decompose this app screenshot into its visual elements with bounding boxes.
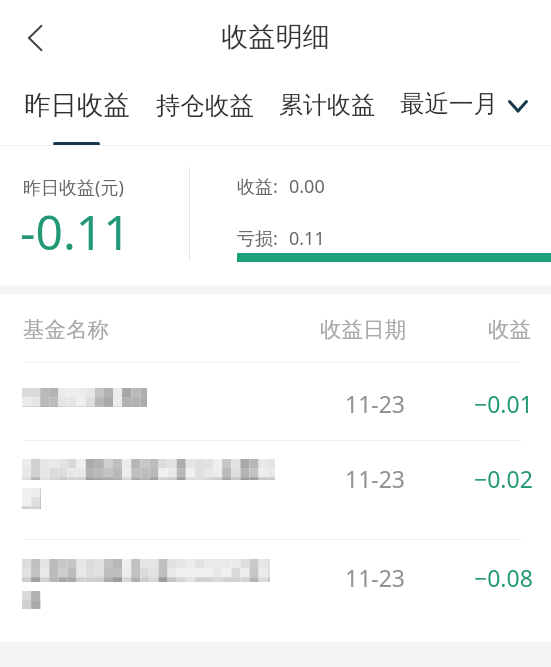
button[interactable]: 11-23 xyxy=(0,441,551,539)
button[interactable]: 累计收益 xyxy=(279,90,375,120)
staticText: 11-23 xyxy=(345,388,406,419)
staticText: 收益 xyxy=(488,316,531,343)
staticText: 收益日期 xyxy=(320,316,406,343)
staticText: 累计收益 xyxy=(279,90,375,120)
button[interactable]: 持仓收益 xyxy=(156,90,254,121)
button[interactable]: 昨日收益 xyxy=(24,88,130,121)
staticText: −0.08 xyxy=(474,562,533,593)
staticText: 昨日收益 xyxy=(24,88,130,121)
staticText: 持仓收益 xyxy=(156,90,254,121)
staticText: -0.11 xyxy=(20,199,131,264)
staticText: 收益明细 xyxy=(0,20,551,54)
staticText: 最近一月 xyxy=(400,88,498,119)
staticText: 亏损: xyxy=(237,226,278,251)
staticText: −0.01 xyxy=(474,388,533,419)
staticText: 昨日收益(元) xyxy=(23,175,124,200)
staticText: 11-23 xyxy=(345,562,406,593)
staticText: −0.02 xyxy=(474,463,533,494)
button[interactable]: 11-23 xyxy=(0,540,551,638)
staticText: 收益: xyxy=(237,174,278,199)
staticText: 0.11 xyxy=(289,226,325,251)
button[interactable]: 最近一月 xyxy=(400,88,528,119)
staticText: 11-23 xyxy=(345,463,406,494)
button[interactable]: Back xyxy=(13,16,57,60)
button[interactable]: 11-23 xyxy=(0,360,551,440)
staticText: 0.00 xyxy=(289,174,325,199)
staticText: 基金名称 xyxy=(23,316,109,343)
